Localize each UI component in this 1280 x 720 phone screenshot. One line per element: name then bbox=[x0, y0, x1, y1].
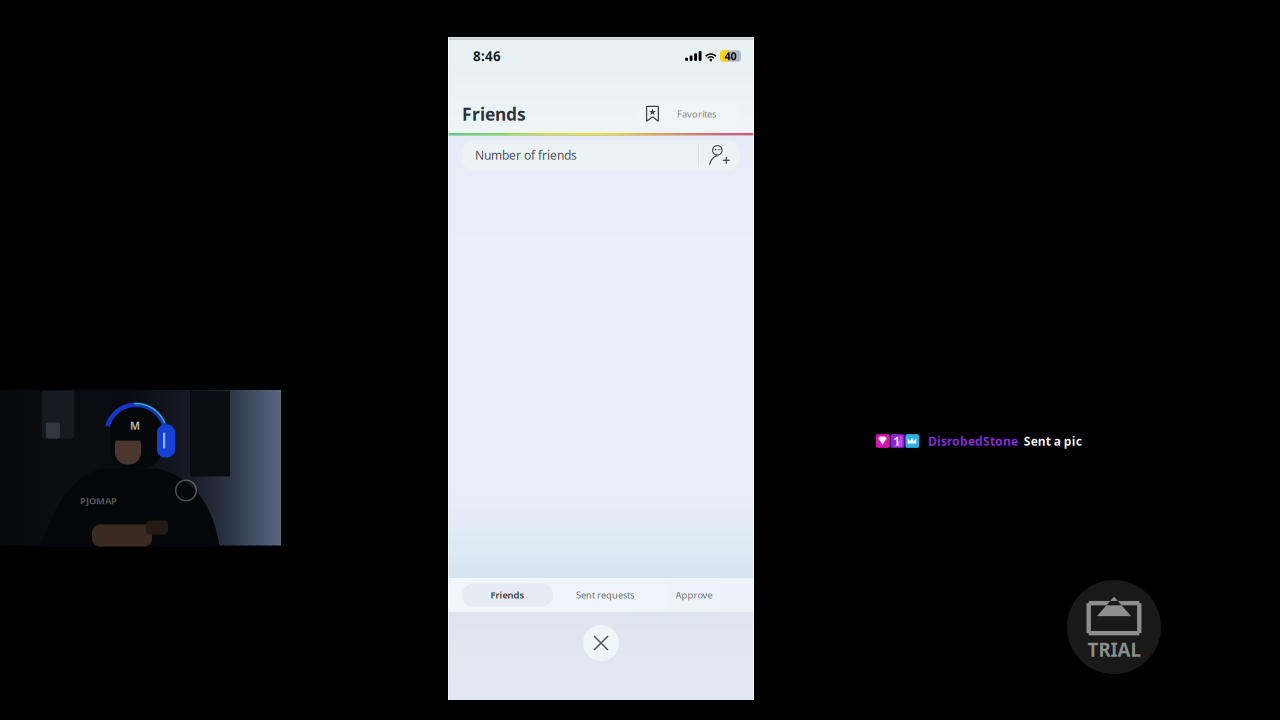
staticText: Approve bbox=[675, 589, 712, 601]
staticText: Favorites bbox=[677, 108, 716, 120]
button[interactable]: Sent requests bbox=[568, 583, 642, 606]
staticText: Friends bbox=[490, 589, 524, 601]
button[interactable]: Add friend bbox=[699, 140, 740, 170]
staticText: Number of friends bbox=[475, 147, 577, 163]
button[interactable]: Favorites bbox=[637, 103, 740, 125]
button[interactable]: Friends bbox=[462, 583, 553, 606]
staticText: Sent requests bbox=[576, 589, 634, 601]
staticText: 8:46 bbox=[473, 47, 501, 65]
staticText: Friends bbox=[462, 102, 526, 125]
staticText: Sent a pic bbox=[1024, 433, 1082, 449]
staticText: TRIAL bbox=[1087, 637, 1140, 662]
staticText: M bbox=[130, 418, 140, 433]
staticText: DisrobedStone bbox=[928, 433, 1018, 449]
staticText: PJOMAP bbox=[80, 494, 117, 507]
staticText: 40 bbox=[724, 49, 736, 63]
button[interactable]: Close bbox=[579, 621, 623, 665]
staticText: 1 bbox=[893, 433, 900, 449]
button[interactable]: Approve bbox=[667, 583, 721, 606]
